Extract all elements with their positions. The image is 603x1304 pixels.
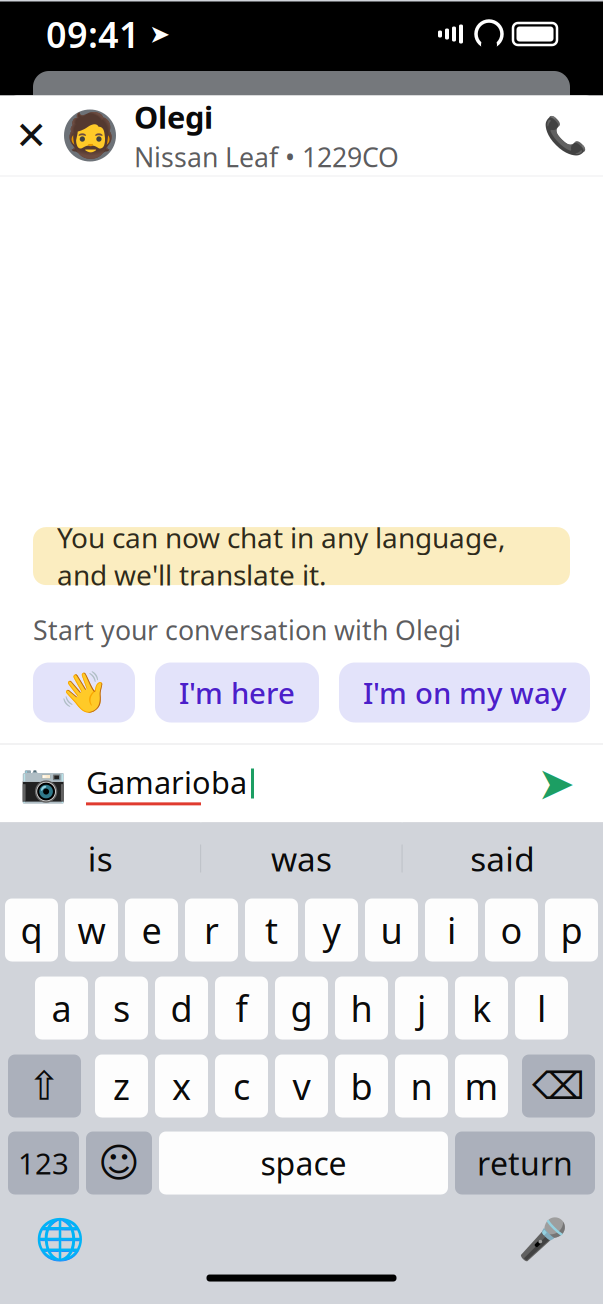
button[interactable]: v	[275, 1054, 328, 1117]
staticText: I'm here	[179, 673, 295, 712]
staticText: 123	[18, 1143, 69, 1182]
staticText: ✕	[15, 114, 47, 157]
button[interactable]: g	[275, 976, 328, 1039]
staticText: 📞	[542, 115, 587, 156]
button[interactable]: i	[425, 898, 478, 961]
button[interactable]: Call	[527, 96, 603, 174]
staticText: 📷	[20, 762, 66, 805]
staticText: u	[380, 906, 402, 954]
staticText: y	[322, 906, 340, 954]
button[interactable]: Send	[521, 756, 591, 810]
staticText: r	[204, 906, 219, 954]
button[interactable]: l	[515, 976, 568, 1039]
button[interactable]: q	[5, 898, 58, 961]
button[interactable]: Shift	[8, 1054, 81, 1117]
staticText: n	[410, 1062, 432, 1110]
button[interactable]: p	[545, 898, 598, 961]
staticText: a	[51, 984, 71, 1032]
button[interactable]: c	[215, 1054, 268, 1117]
button[interactable]: t	[245, 898, 298, 961]
staticText: o	[500, 906, 522, 954]
button[interactable]: I'm here	[155, 662, 319, 722]
staticText: e	[141, 906, 161, 954]
staticText: was	[271, 836, 332, 881]
staticText: ☺	[98, 1140, 140, 1186]
staticText: 🎤	[518, 1217, 568, 1262]
button[interactable]: h	[335, 976, 388, 1039]
staticText: Start your conversation with Olegi	[33, 612, 461, 647]
button[interactable]: s	[95, 976, 148, 1039]
staticText: ➤	[537, 758, 575, 809]
staticText: Gamarioba	[86, 762, 247, 802]
staticText: c	[233, 1062, 250, 1110]
button[interactable]: I'm on my way	[339, 662, 590, 722]
button[interactable]: n	[395, 1054, 448, 1117]
button[interactable]: Delete	[522, 1054, 595, 1117]
button[interactable]: x	[155, 1054, 208, 1117]
staticText: ⇧	[27, 1063, 61, 1109]
button[interactable]: return	[455, 1131, 595, 1194]
staticText: 👋	[59, 670, 109, 715]
button[interactable]: Close	[0, 96, 62, 174]
staticText: l	[537, 984, 546, 1032]
button[interactable]: y	[305, 898, 358, 961]
staticText: b	[350, 1062, 372, 1110]
button[interactable]: 👋	[33, 662, 135, 722]
button[interactable]: z	[95, 1054, 148, 1117]
button[interactable]: was	[201, 822, 402, 894]
button[interactable]: m	[455, 1054, 508, 1117]
staticText: 09:41	[46, 10, 140, 58]
button[interactable]: w	[65, 898, 118, 961]
button[interactable]: Dictation	[508, 1212, 578, 1266]
staticText: w	[77, 906, 105, 954]
button[interactable]: Emoji	[86, 1131, 152, 1194]
staticText: k	[472, 984, 491, 1032]
button[interactable]: Switch keyboard	[25, 1212, 95, 1266]
button[interactable]: j	[395, 976, 448, 1039]
staticText: x	[172, 1062, 191, 1110]
staticText: space	[260, 1142, 346, 1184]
button[interactable]: r	[185, 898, 238, 961]
button[interactable]: u	[365, 898, 418, 961]
button[interactable]: space	[159, 1131, 448, 1194]
staticText: 🌐	[35, 1217, 85, 1262]
button[interactable]: k	[455, 976, 508, 1039]
staticText: Nissan Leaf • 1229CO	[134, 139, 399, 175]
staticText: i	[447, 906, 456, 954]
staticText: z	[113, 1062, 130, 1110]
staticText: return	[477, 1142, 573, 1184]
staticText: ➤	[140, 20, 170, 48]
staticText: d	[170, 984, 192, 1032]
button[interactable]: e	[125, 898, 178, 961]
staticText: v	[292, 1062, 310, 1110]
staticText: m	[464, 1062, 498, 1110]
button[interactable]: is	[0, 822, 200, 894]
button[interactable]: a	[35, 976, 88, 1039]
button[interactable]: o	[485, 898, 538, 961]
staticText: g	[290, 984, 312, 1032]
staticText: ⌫	[532, 1065, 585, 1107]
button[interactable]: b	[335, 1054, 388, 1117]
button[interactable]: d	[155, 976, 208, 1039]
staticText: p	[560, 906, 582, 954]
button[interactable]: Camera	[12, 756, 74, 810]
staticText: said	[470, 836, 535, 881]
staticText: You can now chat in any language, and we…	[57, 519, 506, 593]
staticText: Olegi	[134, 96, 213, 137]
staticText: q	[20, 906, 42, 954]
staticText: 🧔	[63, 111, 116, 160]
button[interactable]: Numbers	[8, 1131, 79, 1194]
staticText: is	[88, 836, 113, 881]
staticText: f	[235, 984, 247, 1032]
button[interactable]: f	[215, 976, 268, 1039]
staticText: h	[350, 984, 372, 1032]
staticText: s	[113, 984, 130, 1032]
staticText: I'm on my way	[363, 673, 566, 712]
button[interactable]: said	[403, 822, 603, 894]
staticText: t	[265, 906, 278, 954]
staticText: j	[417, 984, 426, 1032]
